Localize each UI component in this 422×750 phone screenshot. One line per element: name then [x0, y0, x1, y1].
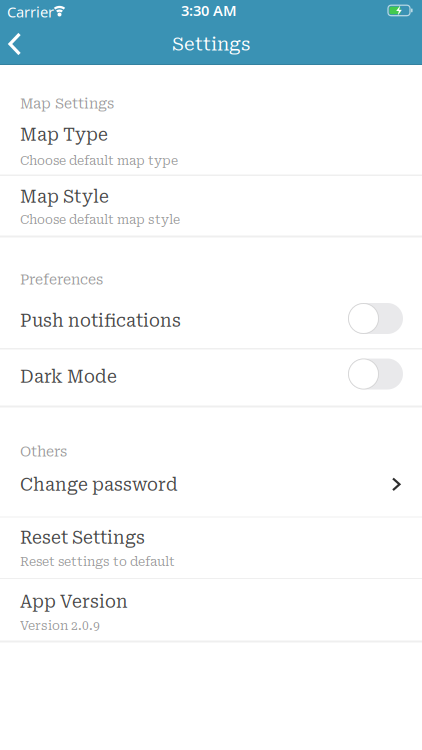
- staticText: 3:30 AM: [181, 0, 237, 20]
- button[interactable]: Back: [0, 0, 44, 62]
- staticText: Carrier: [7, 2, 54, 21]
- staticText: Map Style: [20, 187, 109, 207]
- staticText: Map Settings: [20, 96, 114, 112]
- staticText: Change password: [20, 475, 178, 495]
- staticText: Choose default map type: [20, 154, 178, 168]
- staticText: Choose default map style: [20, 213, 180, 227]
- staticText: Others: [20, 444, 67, 460]
- staticText: App Version: [20, 592, 128, 612]
- button[interactable]: Change password: [0, 466, 422, 516]
- staticText: Reset Settings: [20, 528, 145, 548]
- staticText: Reset settings to default: [20, 555, 175, 569]
- staticText: Preferences: [20, 272, 103, 288]
- staticText: Push notifications: [20, 311, 181, 331]
- button[interactable]: Dark Mode: [0, 349, 422, 405]
- staticText: Settings: [172, 33, 250, 55]
- button[interactable]: Push notifications: [0, 296, 422, 348]
- staticText: Dark Mode: [20, 367, 117, 387]
- button[interactable]: Reset Settings: [0, 517, 422, 578]
- button[interactable]: Map Type: [0, 115, 422, 174]
- staticText: Version 2.0.9: [20, 619, 100, 633]
- button[interactable]: App Version: [0, 579, 422, 640]
- button[interactable]: Map Style: [0, 176, 422, 235]
- staticText: Map Type: [20, 125, 108, 145]
